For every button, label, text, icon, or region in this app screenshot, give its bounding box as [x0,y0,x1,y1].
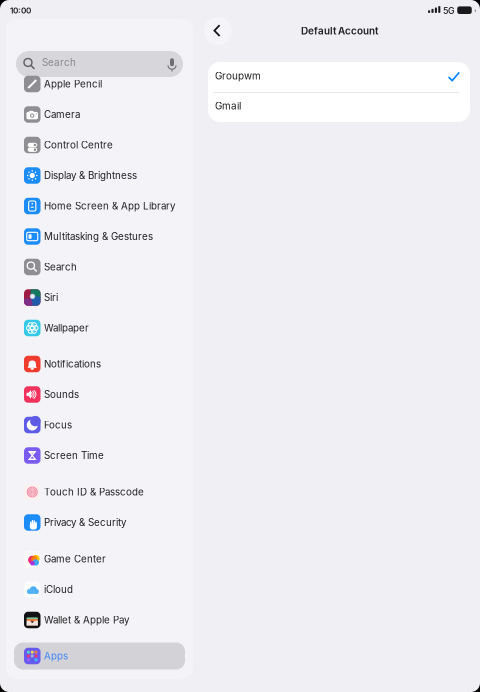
button[interactable]: Multitasking & Gestures [24,223,224,250]
staticText: Camera [44,109,80,120]
button[interactable]: Wallpaper [24,314,224,341]
staticText: Focus [44,419,72,431]
staticText: Touch ID & Passcode [44,486,144,498]
staticText: Apple Pencil [44,78,102,90]
button[interactable]: Display & Brightness [24,162,224,189]
staticText: Sounds [44,389,79,400]
button[interactable]: Groupwm [208,62,470,92]
button[interactable]: Focus [24,411,224,438]
button[interactable]: Touch ID & Passcode [24,478,224,505]
staticText: Siri [44,292,58,303]
button[interactable]: Privacy & Security [24,509,224,536]
button[interactable]: Screen Time [24,442,224,469]
button[interactable]: Search [16,51,183,77]
button[interactable]: Camera [24,101,224,128]
staticText: Apps [44,650,68,662]
staticText: Game Center [44,553,106,565]
staticText: Screen Time [44,450,104,461]
staticText: Privacy & Security [44,517,126,528]
button[interactable]: Wallet & Apple Pay [24,606,224,633]
button[interactable]: Sounds [24,381,224,408]
button[interactable]: Home Screen & App Library [24,192,224,219]
staticText: Wallpaper [44,322,89,334]
staticText: iCloud [44,584,73,595]
staticText: Search [44,261,77,273]
staticText: Display & Brightness [44,170,137,181]
staticText: Default Account [301,25,378,37]
button[interactable]: Apps [24,642,224,669]
staticText: Search [42,56,76,68]
staticText: Groupwm [215,70,261,82]
staticText: Notifications [44,358,101,370]
staticText: Home Screen & App Library [44,200,175,212]
button[interactable]: Notifications [24,350,224,377]
button[interactable]: Siri [24,284,224,311]
button[interactable]: iCloud [24,576,224,603]
button[interactable]: Search [24,253,224,280]
staticText: Control Centre [44,139,113,151]
staticText: 5G [443,5,455,16]
button[interactable]: Game Center [24,545,224,572]
button[interactable]: Apple Pencil [24,70,224,97]
staticText: 10:00 [10,5,31,15]
button[interactable]: Control Centre [24,131,224,158]
staticText: Wallet & Apple Pay [44,614,129,626]
button[interactable]: Back [204,17,232,45]
button[interactable]: Gmail [208,92,470,122]
staticText: Gmail [215,100,241,112]
staticText: Multitasking & Gestures [44,231,153,242]
